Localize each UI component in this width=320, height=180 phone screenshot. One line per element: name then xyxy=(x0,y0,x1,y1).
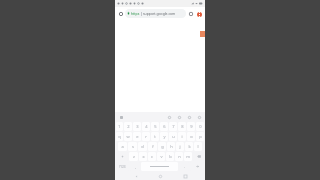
staticText: 8 xyxy=(181,124,184,129)
button[interactable]: p xyxy=(196,132,204,141)
staticText: z xyxy=(133,154,135,159)
staticText: 2 xyxy=(127,124,130,129)
staticText: https xyxy=(131,11,140,16)
button[interactable]: 0 xyxy=(196,122,204,131)
staticText: s xyxy=(132,144,134,149)
button[interactable]: Space xyxy=(141,162,178,171)
button[interactable]: h xyxy=(167,142,175,151)
staticText: i xyxy=(181,134,183,139)
staticText: 3 xyxy=(136,124,139,129)
button[interactable]: c xyxy=(148,152,156,161)
button[interactable]: 6 xyxy=(160,122,168,131)
button[interactable]: i xyxy=(178,132,186,141)
staticText: f xyxy=(152,144,154,149)
button[interactable]: o xyxy=(187,132,195,141)
staticText: . xyxy=(184,164,185,169)
button[interactable]: m xyxy=(184,152,192,161)
staticText: u xyxy=(172,134,175,139)
button[interactable]: q xyxy=(116,132,123,141)
staticText: ?123 xyxy=(119,165,126,169)
button[interactable]: n xyxy=(175,152,183,161)
button[interactable]: Go xyxy=(190,162,204,171)
staticText: 9 xyxy=(190,124,193,129)
button[interactable]: y xyxy=(160,132,168,141)
button[interactable]: k xyxy=(185,142,193,151)
button[interactable]: Reload xyxy=(117,10,125,18)
button[interactable]: Recents xyxy=(181,172,189,180)
button[interactable]: 5 xyxy=(151,122,159,131)
staticText: 0 xyxy=(199,124,202,129)
staticText: y xyxy=(163,134,166,139)
button[interactable]: a xyxy=(118,142,127,151)
button[interactable]: Back xyxy=(132,172,140,180)
button[interactable]: Tabs xyxy=(187,10,195,18)
button[interactable]: 8 xyxy=(178,122,186,131)
staticText: j xyxy=(179,144,181,149)
button[interactable]: Backspace xyxy=(193,152,204,161)
staticText: a xyxy=(121,144,124,149)
staticText: support.google.com xyxy=(143,11,176,16)
staticText: n xyxy=(178,154,181,159)
staticText: p xyxy=(199,134,202,139)
staticText: q xyxy=(118,134,121,139)
button[interactable]: Symbols xyxy=(116,162,129,171)
button[interactable]: Theme xyxy=(196,114,202,120)
button[interactable]: t xyxy=(151,132,159,141)
staticText: g xyxy=(161,144,164,149)
staticText: d xyxy=(141,144,144,149)
staticText: t xyxy=(154,134,156,139)
button[interactable]: 2 xyxy=(124,122,132,131)
staticText: k xyxy=(188,144,191,149)
staticText: 7 xyxy=(172,124,175,129)
button[interactable]: r xyxy=(142,132,150,141)
button[interactable]: z xyxy=(129,152,138,161)
button[interactable]: 4 xyxy=(142,122,150,131)
button[interactable]: 3 xyxy=(133,122,141,131)
staticText: 6 xyxy=(163,124,166,129)
button[interactable]: https xyxy=(125,9,186,18)
staticText: 1 xyxy=(118,124,121,129)
button[interactable]: v xyxy=(157,152,165,161)
staticText: m xyxy=(186,154,190,159)
button[interactable]: b xyxy=(166,152,174,161)
button[interactable]: GIF xyxy=(166,114,172,120)
staticText: v xyxy=(160,154,163,159)
button[interactable]: d xyxy=(138,142,147,151)
button[interactable]: Keyboard settings xyxy=(118,114,124,120)
staticText: w xyxy=(126,134,130,139)
button[interactable]: 1 xyxy=(116,122,123,131)
button[interactable]: Settings xyxy=(186,114,192,120)
button[interactable]: f xyxy=(148,142,157,151)
staticText: c xyxy=(151,154,153,159)
staticText: o xyxy=(190,134,193,139)
staticText: r xyxy=(145,134,147,139)
button[interactable]: w xyxy=(124,132,132,141)
button[interactable]: j xyxy=(176,142,184,151)
staticText: b xyxy=(169,154,172,159)
button[interactable]: u xyxy=(169,132,177,141)
staticText: e xyxy=(136,134,139,139)
button[interactable]: Home xyxy=(156,172,164,180)
staticText: x xyxy=(142,154,145,159)
staticText: , xyxy=(135,164,136,169)
button[interactable]: g xyxy=(158,142,166,151)
button[interactable]: l xyxy=(194,142,202,151)
button[interactable]: x xyxy=(139,152,147,161)
staticText: 5 xyxy=(154,124,157,129)
staticText: 4 xyxy=(145,124,148,129)
button[interactable]: s xyxy=(128,142,137,151)
button[interactable]: e xyxy=(133,132,141,141)
button[interactable]: 7 xyxy=(169,122,177,131)
staticText: l xyxy=(197,144,199,149)
staticText: h xyxy=(170,144,173,149)
button[interactable]: 9 xyxy=(187,122,195,131)
button[interactable]: Sticker xyxy=(176,114,182,120)
button[interactable]: Shift xyxy=(116,152,128,161)
button[interactable]: More options xyxy=(195,10,203,18)
